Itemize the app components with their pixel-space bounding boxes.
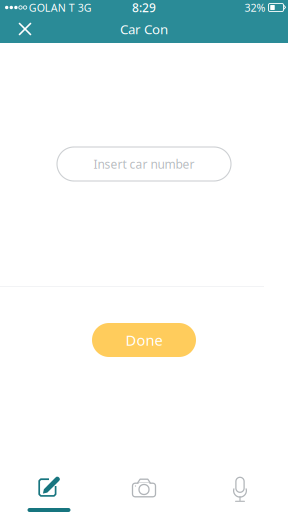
staticText: Done: [125, 330, 162, 350]
button[interactable]: Done: [92, 323, 196, 357]
staticText: 32%: [244, 0, 265, 15]
staticText: 3G: [78, 0, 92, 15]
button[interactable]: Camera: [96, 466, 192, 512]
button[interactable]: Insert car number: [57, 147, 231, 181]
staticText: GOLAN T: [29, 0, 75, 15]
staticText: Insert car number: [93, 156, 194, 172]
button[interactable]: Microphone: [192, 466, 288, 512]
button[interactable]: Close: [0, 15, 50, 43]
button[interactable]: Compose: [0, 466, 96, 512]
staticText: Car Con: [120, 20, 168, 38]
staticText: 8:29: [132, 0, 156, 15]
